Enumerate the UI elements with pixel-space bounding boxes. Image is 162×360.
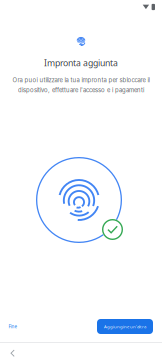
- staticText: Impronta aggiunta: [44, 57, 118, 69]
- button[interactable]: Fine: [2, 319, 24, 334]
- staticText: Ora puoi utilizzare la tua impronta per …: [12, 76, 149, 84]
- staticText: dispositivo, effettuare l'accesso e i pa…: [18, 86, 144, 94]
- button[interactable]: Aggiungine un'altra: [97, 319, 153, 334]
- staticText: Aggiungine un'altra: [104, 324, 146, 329]
- button[interactable]: Back: [6, 345, 20, 360]
- staticText: Fine: [8, 323, 17, 330]
